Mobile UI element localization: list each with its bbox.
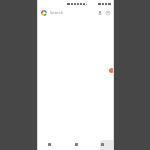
button[interactable]: Voice search xyxy=(96,9,103,16)
staticText: Search xyxy=(50,10,64,16)
button[interactable]: Recents xyxy=(100,140,114,150)
button[interactable]: Overview xyxy=(98,140,106,148)
button[interactable]: App menu xyxy=(40,9,47,16)
button[interactable]: Account xyxy=(104,9,111,16)
button[interactable]: Home xyxy=(72,140,80,148)
other: Indicator xyxy=(109,68,114,73)
button[interactable]: Search xyxy=(50,7,96,18)
button[interactable]: Back xyxy=(45,140,53,148)
